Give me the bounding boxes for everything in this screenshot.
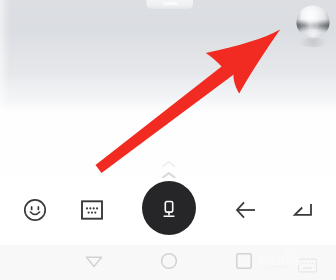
button[interactable]: Back xyxy=(78,245,110,277)
button[interactable]: Recents xyxy=(228,245,260,277)
button[interactable]: Switch input method xyxy=(296,254,318,276)
button[interactable]: Emoji xyxy=(15,190,55,230)
button[interactable]: Back xyxy=(226,190,266,230)
button[interactable]: Keyboard xyxy=(71,189,112,230)
button[interactable]: Enter xyxy=(284,190,324,230)
button[interactable]: Home xyxy=(153,245,185,277)
button[interactable]: Voice input xyxy=(142,181,196,235)
